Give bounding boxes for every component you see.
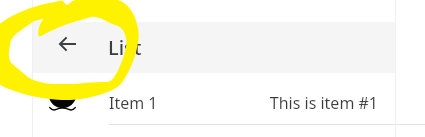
- staticText: List: [108, 34, 142, 61]
- staticText: This is item #1: [32, 92, 378, 114]
- staticText: Item 1: [109, 92, 158, 114]
- button[interactable]: Boat: [44, 80, 80, 116]
- button[interactable]: Back: [48, 24, 88, 64]
